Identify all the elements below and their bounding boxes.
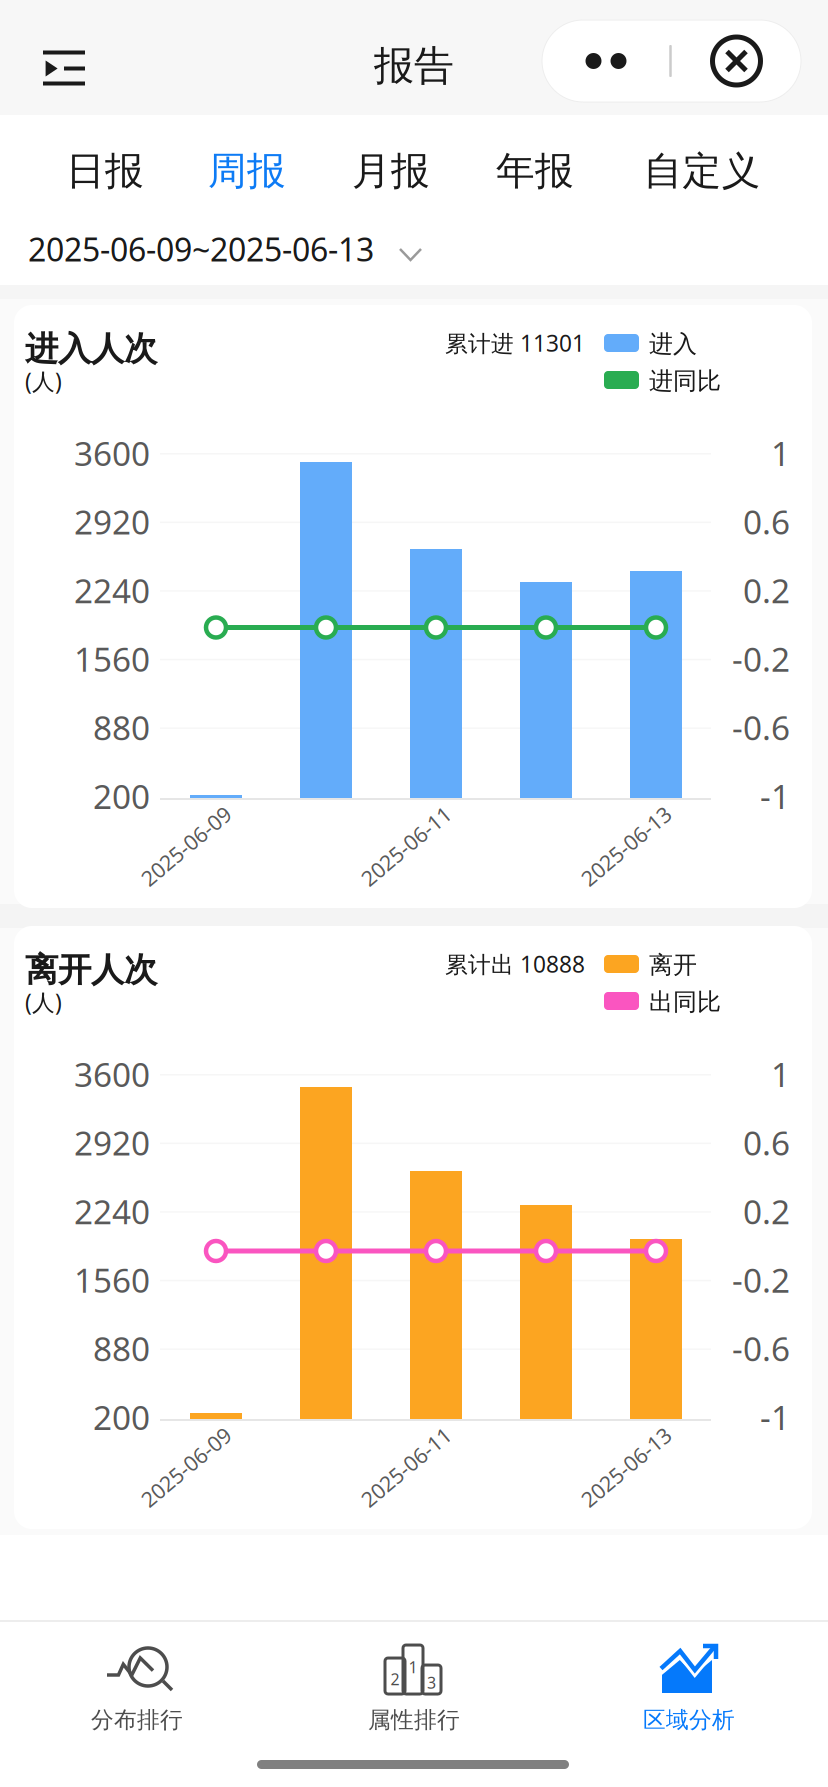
staticText: 1560 (74, 637, 150, 681)
staticText: 累计出 10888 (445, 949, 585, 979)
staticText: -1 (760, 1395, 790, 1439)
staticText: 0.6 (743, 1120, 790, 1165)
staticText: 880 (93, 1326, 150, 1371)
staticText: 2025-06-11 (351, 832, 461, 860)
staticText: 1560 (74, 1258, 150, 1302)
staticText: 2025-06-09~2025-06-13 (28, 228, 374, 270)
staticText: 2025-06-13 (571, 832, 681, 860)
staticText: 2025-06-09 (131, 832, 241, 860)
button[interactable]: 区域分析 (655, 1645, 723, 1735)
staticText: 0.2 (743, 568, 790, 612)
staticText: -1 (760, 774, 790, 818)
staticText: 出同比 (649, 987, 721, 1017)
button[interactable]: 2 (380, 1645, 448, 1735)
staticText: 进同比 (649, 366, 721, 396)
button[interactable]: 分布排行 (103, 1645, 171, 1735)
button[interactable]: 自定义 (617, 133, 787, 209)
staticText: 进入人次 (25, 328, 157, 369)
staticText: 年报 (496, 147, 574, 195)
staticText: -0.6 (732, 705, 790, 750)
staticText: 3600 (74, 431, 150, 475)
staticText: 0.2 (743, 1189, 790, 1233)
staticText: 2240 (74, 568, 150, 612)
staticText: 3 (427, 1672, 436, 1693)
staticText: 2240 (74, 1189, 150, 1233)
staticText: 2025-06-13 (571, 1453, 681, 1481)
button[interactable]: More options (542, 20, 801, 102)
staticText: 累计进 11301 (445, 328, 585, 358)
staticText: 880 (93, 705, 150, 750)
staticText: 1 (408, 1656, 417, 1678)
staticText: 日报 (66, 147, 144, 195)
staticText: -0.2 (732, 1258, 790, 1302)
staticText: 离开 (649, 950, 697, 980)
staticText: 3600 (74, 1052, 150, 1096)
staticText: 2920 (74, 499, 150, 544)
button[interactable]: 周报 (186, 133, 308, 209)
staticText: 2025-06-09 (131, 1453, 241, 1481)
staticText: 报告 (374, 41, 454, 90)
button[interactable]: 2025-06-09~2025-06-13 (28, 224, 498, 280)
staticText: 周报 (208, 147, 286, 195)
staticText: 2920 (74, 1120, 150, 1165)
staticText: 进入 (649, 329, 697, 359)
staticText: 自定义 (643, 147, 760, 195)
staticText: (人) (25, 366, 62, 396)
staticText: 区域分析 (643, 1706, 735, 1734)
staticText: 分布排行 (91, 1706, 183, 1734)
staticText: (人) (25, 987, 62, 1017)
staticText: 2025-06-11 (351, 1453, 461, 1481)
staticText: -0.2 (732, 637, 790, 681)
button[interactable]: 月报 (330, 133, 452, 209)
button[interactable]: 日报 (44, 133, 166, 209)
staticText: 离开人次 (25, 949, 157, 990)
staticText: 1 (771, 1052, 790, 1096)
staticText: 月报 (352, 147, 430, 195)
staticText: 200 (93, 1395, 150, 1439)
staticText: 属性排行 (368, 1706, 460, 1734)
staticText: -0.6 (732, 1326, 790, 1371)
button[interactable]: 年报 (474, 133, 596, 209)
staticText: 2 (390, 1668, 399, 1690)
staticText: 1 (771, 431, 790, 475)
staticText: 200 (93, 774, 150, 818)
staticText: 0.6 (743, 499, 790, 544)
button[interactable]: Menu (20, 24, 108, 112)
